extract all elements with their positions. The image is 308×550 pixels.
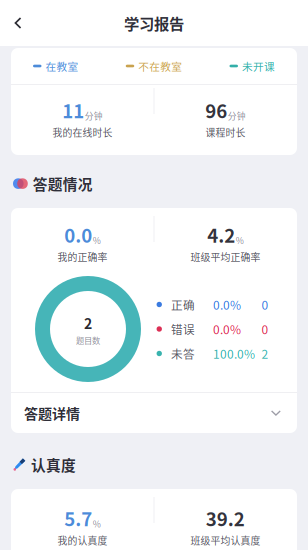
staticText: 认真度 [31, 454, 76, 475]
staticText: 96 [205, 97, 227, 124]
staticText: 课程时长 [205, 125, 245, 139]
staticText: 班级平均正确率 [190, 250, 260, 264]
staticText: 39.2 [206, 505, 245, 532]
staticText: 0.0 [64, 221, 92, 248]
staticText: 我的认真度 [57, 533, 107, 547]
staticText: % [93, 234, 101, 247]
staticText: 5.7 [64, 505, 92, 532]
staticText: % [236, 234, 244, 247]
staticText: 4.2 [207, 221, 235, 248]
staticText: 答题情况 [33, 173, 93, 194]
staticText: 在教室 [45, 58, 78, 74]
staticText: 答题详情 [24, 403, 80, 423]
staticText: 11 [62, 97, 84, 124]
staticText: 0.0% [213, 320, 241, 338]
staticText: 0 [261, 320, 268, 338]
staticText: 错误 [171, 321, 195, 337]
staticText: % [93, 517, 101, 530]
staticText: 我的在线时长 [52, 125, 112, 139]
staticText: 未答 [171, 345, 195, 362]
staticText: 分钟 [85, 109, 103, 122]
button[interactable]: 返回 [0, 1, 36, 45]
staticText: 分钟 [228, 109, 246, 122]
staticText: 题目数 [76, 334, 100, 346]
staticText: 正确 [171, 296, 195, 313]
staticText: 学习报告 [124, 12, 184, 34]
staticText: 我的正确率 [57, 250, 107, 264]
staticText: 0.0% [213, 296, 241, 313]
staticText: 100.0% [213, 345, 255, 362]
staticText: 0 [261, 296, 268, 313]
staticText: 不在教室 [138, 58, 182, 74]
staticText: 2 [261, 345, 268, 362]
staticText: 2 [84, 313, 92, 333]
staticText: 班级平均认真度 [190, 533, 260, 547]
staticText: 未开课 [242, 58, 275, 74]
button[interactable]: 答题详情 [11, 393, 297, 433]
